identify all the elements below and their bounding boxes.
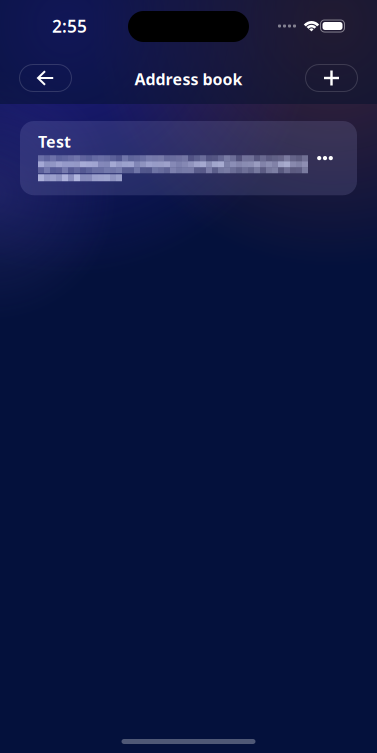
button[interactable]: Add contact [305, 64, 357, 91]
button[interactable]: Back [19, 64, 71, 91]
staticText: 2:55 [52, 14, 87, 37]
staticText: Test [38, 131, 71, 152]
staticText: Address book [134, 68, 242, 90]
button[interactable]: Test [20, 121, 357, 195]
